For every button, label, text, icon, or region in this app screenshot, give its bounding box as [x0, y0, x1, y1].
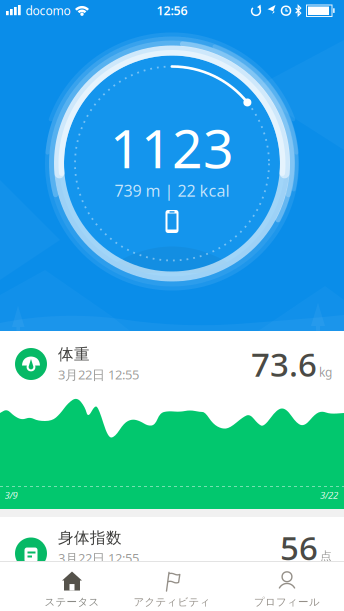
- staticText: アクティビティ: [133, 596, 210, 608]
- staticText: プロフィール: [254, 596, 320, 608]
- staticText: 3/22: [320, 489, 338, 501]
- staticText: 739 m | 22 kcal: [114, 180, 229, 201]
- button[interactable]: ステータス: [20, 566, 124, 611]
- staticText: docomo: [25, 2, 70, 18]
- staticText: ステータス: [44, 596, 99, 608]
- button[interactable]: アクティビティ: [120, 566, 224, 611]
- staticText: 1123: [110, 112, 234, 183]
- staticText: 56: [280, 526, 318, 569]
- button[interactable]: 体重: [0, 340, 344, 383]
- staticText: 3月22日 12:55: [58, 366, 139, 383]
- staticText: 点: [320, 549, 332, 564]
- button[interactable]: 身体指数: [0, 523, 344, 567]
- staticText: kg: [319, 364, 332, 380]
- staticText: 3月22日 12:55: [58, 549, 139, 567]
- staticText: 3/9: [4, 489, 17, 501]
- staticText: 73.6: [251, 342, 317, 386]
- staticText: 身体指数: [58, 528, 122, 547]
- button[interactable]: プロフィール: [235, 566, 339, 611]
- staticText: 体重: [58, 345, 90, 364]
- staticText: 12:56: [156, 2, 187, 19]
